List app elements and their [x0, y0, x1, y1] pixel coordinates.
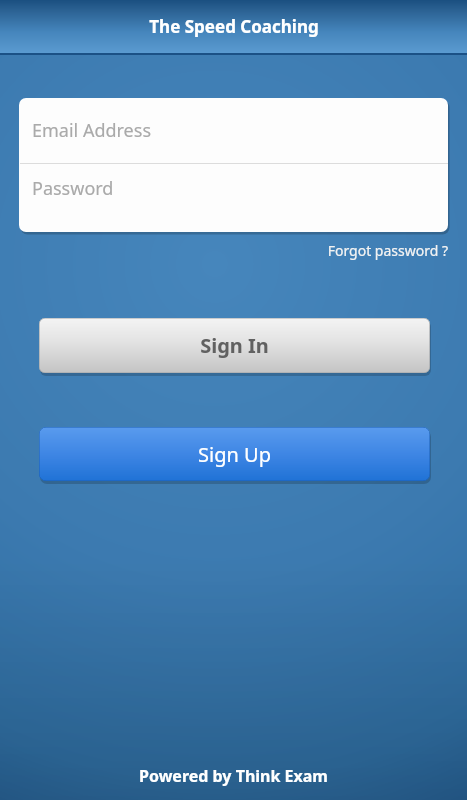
- staticText: Email Address: [32, 118, 152, 143]
- staticText: Forgot password ?: [327, 241, 448, 260]
- staticText: Sign In: [200, 332, 269, 359]
- button[interactable]: Forgot password ?: [300, 236, 448, 264]
- button[interactable]: Sign In: [39, 318, 430, 373]
- staticText: Sign Up: [198, 441, 271, 468]
- button[interactable]: Password: [19, 164, 448, 232]
- staticText: The Speed Coaching: [149, 15, 319, 38]
- staticText: Powered by Think Exam: [139, 765, 328, 787]
- button[interactable]: Email Address: [19, 98, 448, 163]
- button[interactable]: Sign Up: [39, 427, 430, 481]
- staticText: Password: [32, 176, 114, 201]
